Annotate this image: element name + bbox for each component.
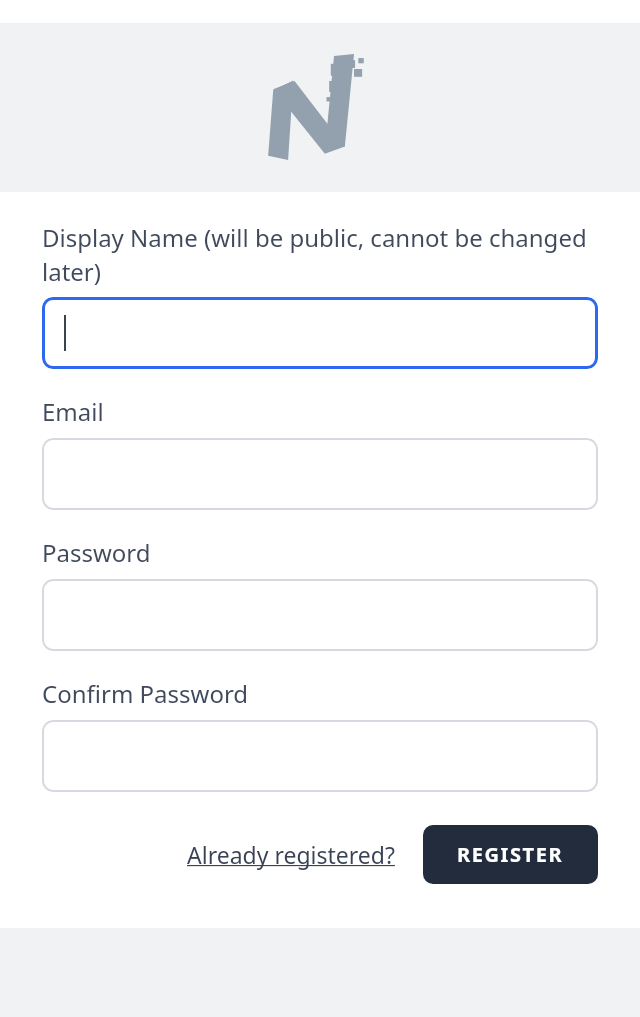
other: Logo [266, 56, 374, 160]
staticText: REGISTER [457, 841, 564, 868]
staticText: Confirm Password [42, 677, 249, 710]
staticText: Already registered? [187, 839, 395, 870]
button[interactable] [42, 438, 598, 510]
button[interactable]: REGISTER [423, 825, 598, 884]
staticText: Password [42, 536, 151, 569]
button[interactable]: Already registered? [183, 833, 399, 876]
button[interactable] [42, 297, 598, 369]
staticText: Display Name (will be public, cannot be … [42, 221, 598, 289]
button[interactable] [42, 720, 598, 792]
button[interactable] [42, 579, 598, 651]
staticText: Email [42, 395, 104, 428]
